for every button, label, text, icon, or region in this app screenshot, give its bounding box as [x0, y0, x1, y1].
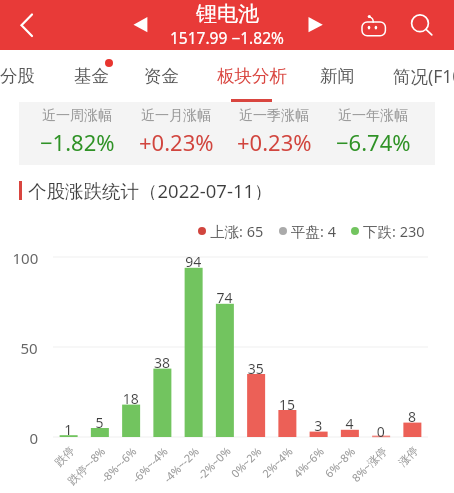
- button[interactable]: 上涨: 65: [198, 221, 264, 241]
- staticText: 简况(F10): [393, 64, 454, 88]
- staticText: −6.74%: [336, 127, 411, 157]
- button[interactable]: AI assistant: [349, 0, 399, 50]
- staticText: +0.23%: [139, 127, 214, 157]
- button[interactable]: 下跌: 230: [351, 221, 425, 241]
- button[interactable]: 分股: [0, 60, 35, 92]
- staticText: 平盘: 4: [291, 221, 336, 241]
- button[interactable]: 简况(F10): [393, 60, 454, 92]
- staticText: 新闻: [320, 65, 355, 87]
- staticText: 基金: [74, 65, 109, 87]
- staticText: 近一年涨幅: [338, 107, 408, 125]
- staticText: 1517.99 −1.82%: [170, 27, 284, 48]
- button[interactable]: Previous sector: [120, 0, 160, 50]
- button[interactable]: 基金: [74, 60, 109, 92]
- staticText: 资金: [144, 65, 179, 87]
- staticText: +0.23%: [237, 127, 312, 157]
- staticText: 分股: [0, 65, 35, 87]
- button[interactable]: 近一年涨幅: [333, 102, 413, 165]
- staticText: 锂电池: [196, 1, 259, 27]
- button[interactable]: 平盘: 4: [279, 221, 336, 241]
- button[interactable]: Search: [404, 0, 454, 50]
- staticText: −1.82%: [40, 127, 115, 157]
- button[interactable]: Next sector: [295, 0, 335, 50]
- staticText: 个股涨跌统计（2022-07-11）: [28, 178, 273, 200]
- staticText: 近一月涨幅: [141, 107, 211, 125]
- button[interactable]: 近一季涨幅: [234, 102, 314, 165]
- button[interactable]: 近一月涨幅: [136, 102, 216, 165]
- staticText: 下跌: 230: [363, 221, 425, 241]
- staticText: 近一季涨幅: [239, 107, 309, 125]
- button[interactable]: 近一周涨幅: [37, 102, 117, 165]
- button[interactable]: Back: [0, 0, 50, 50]
- button[interactable]: 板块分析: [217, 60, 287, 92]
- button[interactable]: 资金: [144, 60, 179, 92]
- staticText: 板块分析: [217, 65, 287, 87]
- staticText: 近一周涨幅: [42, 107, 112, 125]
- staticText: 上涨: 65: [210, 221, 264, 241]
- button[interactable]: 新闻: [320, 60, 355, 92]
